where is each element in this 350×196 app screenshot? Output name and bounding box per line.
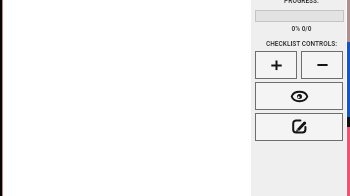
staticText: 0% 0/0: [254, 25, 349, 33]
staticText: PROGRESS:: [254, 0, 349, 5]
button[interactable]: Remove item: [301, 51, 343, 79]
button[interactable]: Add item: [255, 51, 297, 79]
button[interactable]: Preview checklist: [255, 82, 343, 110]
button[interactable]: Edit checklist: [255, 113, 343, 141]
staticText: CHECKLIST CONTROLS:: [254, 40, 349, 48]
